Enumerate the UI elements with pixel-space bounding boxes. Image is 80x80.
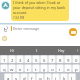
staticText: Enter message — [13, 26, 40, 31]
staticText: f — [31, 75, 33, 80]
button[interactable]: Hi — [0, 46, 24, 55]
button[interactable]: 0 — [72, 56, 80, 63]
staticText: 9 — [67, 57, 70, 63]
button[interactable]: 4 — [24, 56, 32, 63]
button[interactable]: t — [32, 65, 40, 72]
staticText: 2 — [11, 57, 14, 63]
button[interactable]: 2 — [8, 56, 16, 63]
button[interactable]: 9 — [64, 56, 72, 63]
staticText: 1 — [3, 57, 6, 63]
staticText: s — [15, 75, 18, 80]
button[interactable]: 6 — [40, 56, 48, 63]
button[interactable]: r — [24, 65, 32, 72]
button[interactable]: q — [0, 65, 8, 72]
button[interactable]: o — [64, 65, 72, 72]
button[interactable]: w — [8, 65, 16, 72]
button[interactable]: 7 — [48, 56, 56, 63]
button[interactable]: a — [4, 74, 12, 80]
staticText: Hi — [10, 48, 14, 53]
button[interactable]: I — [24, 46, 49, 55]
button[interactable]: l — [68, 74, 76, 80]
staticText: I — [36, 48, 38, 53]
staticText: l — [71, 75, 73, 80]
staticText: p — [75, 66, 78, 72]
staticText: e — [19, 66, 22, 72]
staticText: 0 — [75, 57, 78, 63]
button[interactable]: u — [48, 65, 56, 72]
staticText: r — [27, 66, 29, 72]
button[interactable]: p — [72, 65, 80, 72]
staticText: q — [3, 66, 6, 72]
staticText: Hey — [58, 48, 65, 53]
staticText: a — [7, 75, 10, 80]
button[interactable]: Attach file — [0, 23, 11, 34]
button[interactable]: 1 — [0, 56, 8, 63]
staticText: g — [39, 75, 42, 80]
button[interactable]: Contact avatar — [1, 1, 10, 10]
button[interactable]: Send message — [69, 28, 77, 36]
staticText: 7 — [51, 57, 54, 63]
staticText: 5 — [35, 57, 38, 63]
staticText: 6 — [43, 57, 46, 63]
staticText: w — [10, 66, 14, 72]
button[interactable]: g — [36, 74, 44, 80]
staticText: 8 — [59, 57, 62, 63]
button[interactable]: 5 — [32, 56, 40, 63]
staticText: 7:24 PM — [13, 16, 25, 20]
button[interactable]: i — [56, 65, 64, 72]
staticText: 4 — [27, 57, 30, 63]
staticText: t — [35, 66, 37, 72]
staticText: h — [47, 75, 50, 80]
button[interactable]: f — [28, 74, 36, 80]
button[interactable]: Emoji — [2, 36, 7, 41]
staticText: i — [59, 66, 61, 72]
button[interactable]: h — [44, 74, 52, 80]
button[interactable]: I think of you when I look at your depos… — [11, 0, 69, 21]
button[interactable]: e — [16, 65, 24, 72]
staticText: o — [67, 66, 70, 72]
button[interactable]: s — [12, 74, 20, 80]
staticText: I think of you when I look at your depos… — [13, 0, 67, 15]
button[interactable]: k — [60, 74, 68, 80]
staticText: u — [51, 66, 54, 72]
staticText: k — [63, 75, 66, 80]
button[interactable]: d — [20, 74, 28, 80]
staticText: y — [43, 66, 46, 72]
button[interactable]: 3 — [16, 56, 24, 63]
staticText: 3 — [19, 57, 22, 63]
staticText: d — [23, 75, 26, 80]
button[interactable]: y — [40, 65, 48, 72]
button[interactable]: j — [52, 74, 60, 80]
button[interactable]: More suggestions — [74, 46, 80, 55]
button[interactable]: 8 — [56, 56, 64, 63]
staticText: j — [55, 75, 57, 80]
button[interactable]: Hey — [49, 46, 74, 55]
